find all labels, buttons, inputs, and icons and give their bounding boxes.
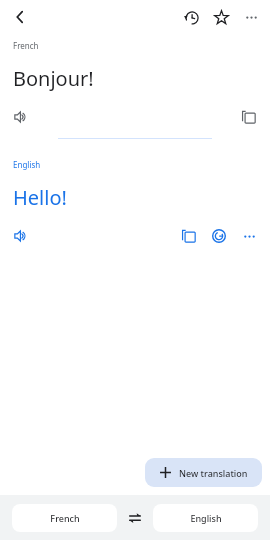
staticText: Bonjour! [13, 65, 94, 92]
button[interactable]: History [176, 2, 206, 32]
staticText: English [13, 159, 41, 170]
button[interactable]: Listen to source text [6, 102, 36, 132]
button[interactable]: Back [6, 3, 34, 31]
button[interactable]: French [12, 504, 117, 532]
button[interactable]: More translation options [234, 221, 264, 251]
button[interactable]: New translation [145, 458, 262, 487]
staticText: English [190, 512, 222, 524]
staticText: French [50, 512, 80, 524]
button[interactable]: More options [236, 2, 266, 32]
button[interactable]: Swap languages [117, 504, 153, 532]
button[interactable]: Search with Google [204, 221, 234, 251]
button[interactable]: Listen to translation [6, 221, 36, 251]
staticText: French [13, 40, 39, 51]
staticText: Hello! [13, 184, 67, 211]
button[interactable]: Copy translation [174, 221, 204, 251]
button[interactable]: Copy source text [234, 102, 264, 132]
button[interactable]: English [153, 504, 258, 532]
button[interactable]: Save translation [206, 2, 236, 32]
staticText: New translation [179, 467, 248, 479]
